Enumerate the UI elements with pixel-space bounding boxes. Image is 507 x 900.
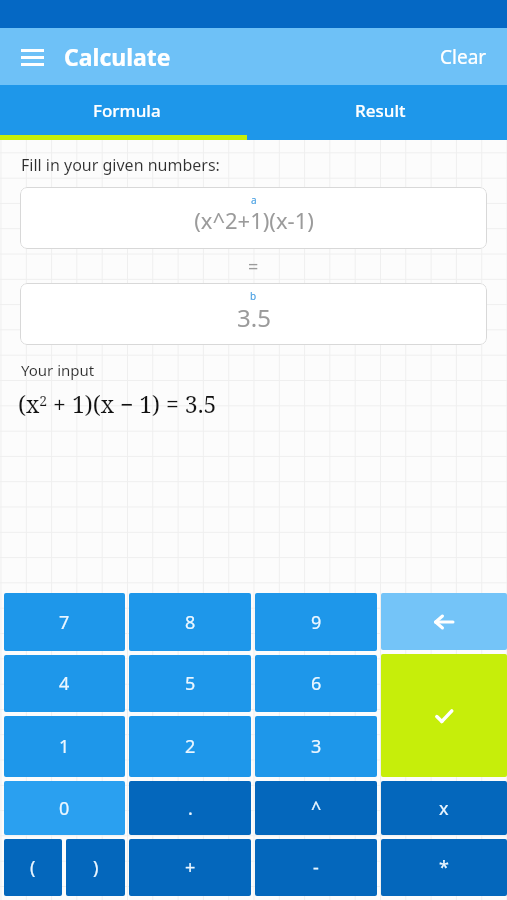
button[interactable]: 4 [4,655,125,712]
button[interactable]: Formula [0,85,253,140]
staticText: 9 [311,610,322,635]
button[interactable]: a [20,187,487,249]
staticText: 7 [59,610,70,635]
button[interactable]: 8 [129,593,251,651]
staticText: . [188,796,193,821]
staticText: = [248,254,259,279]
staticText: * [439,855,449,880]
staticText: Fill in your given numbers: [21,154,220,176]
button[interactable]: ^ [255,781,377,835]
staticText: a [251,193,257,207]
staticText: 3.5 [237,301,271,334]
button[interactable]: . [129,781,251,835]
button[interactable]: 0 [4,781,125,835]
staticText: (x^2+1)(x-1) [194,205,314,235]
button[interactable]: ( [4,839,62,896]
staticText: - [313,855,319,880]
staticText: b [250,289,257,303]
staticText: 2 [185,734,196,759]
staticText: x [439,796,449,821]
button[interactable]: ) [66,839,125,896]
staticText: (x2 + 1)(x − 1) = 3.5 [18,388,217,419]
staticText: Your input [21,360,95,380]
button[interactable]: Open navigation menu [9,34,55,80]
staticText: Calculate [64,41,171,72]
staticText: 0 [59,796,70,821]
staticText: ^ [311,796,322,821]
staticText: Formula [93,99,161,122]
staticText: ) [93,855,99,880]
button[interactable]: + [129,839,251,896]
staticText: 6 [311,671,322,696]
staticText: 4 [59,671,70,696]
staticText: Result [355,99,406,122]
button[interactable]: 6 [255,655,377,712]
button[interactable]: Calculate [381,654,507,777]
staticText: 1 [59,734,70,759]
staticText: 3 [311,734,322,759]
button[interactable]: Clear [420,28,507,85]
button[interactable]: x [381,781,507,835]
staticText: + [185,855,196,880]
button[interactable]: 3 [255,716,377,777]
button[interactable]: * [381,839,507,896]
button[interactable]: - [255,839,377,896]
staticText: 5 [185,671,196,696]
button[interactable]: Result [253,85,507,140]
staticText: Clear [440,44,487,70]
button[interactable]: 5 [129,655,251,712]
button[interactable]: 1 [4,716,125,777]
staticText: ( [30,855,36,880]
button[interactable]: 9 [255,593,377,651]
button[interactable]: 2 [129,716,251,777]
button[interactable]: Backspace [381,593,507,650]
staticText: 8 [185,610,196,635]
button[interactable]: b [20,283,487,345]
button[interactable]: 7 [4,593,125,651]
